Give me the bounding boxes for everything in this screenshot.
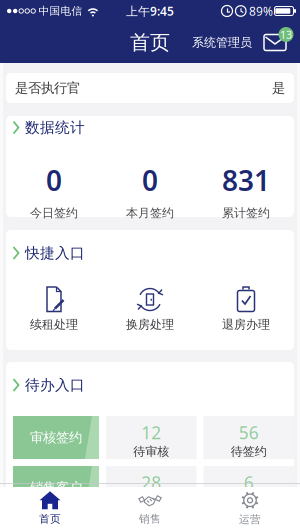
staticText: 运营 — [239, 513, 261, 526]
staticText: 28 — [141, 471, 161, 494]
button[interactable]: 12 — [106, 416, 196, 459]
staticText: 中国电信 — [38, 4, 82, 17]
staticText: 续租处理 — [30, 317, 78, 332]
staticText: 数据统计 — [25, 118, 85, 136]
staticText: 0 — [46, 161, 62, 199]
staticText: 审核签约 — [30, 429, 82, 446]
button[interactable]: 续租处理 — [6, 286, 102, 332]
staticText: 销售 — [139, 512, 161, 525]
button[interactable]: 消息 — [252, 34, 300, 50]
button[interactable]: 28 — [106, 466, 196, 509]
staticText: 56 — [239, 421, 259, 444]
staticText: 待办入口 — [25, 376, 85, 394]
staticText: 是否执行官 — [15, 80, 80, 96]
staticText: 快捷入口 — [25, 244, 85, 262]
staticText: 退房办理 — [222, 317, 270, 332]
staticText: 待签约 — [231, 444, 267, 459]
staticText: 今日签约 — [30, 206, 78, 220]
button[interactable]: 是否执行官 — [0, 73, 300, 103]
staticText: 待分配 — [231, 494, 267, 509]
button[interactable]: 运营 — [200, 491, 300, 526]
button[interactable]: 首页 — [0, 491, 100, 525]
staticText: 销售客户 — [30, 479, 82, 496]
button[interactable]: 换房处理 — [102, 286, 198, 332]
button[interactable]: 销售客户 — [13, 466, 99, 509]
button[interactable]: 56 — [203, 416, 294, 459]
staticText: 是 — [272, 80, 285, 96]
staticText: 13 — [280, 27, 292, 42]
button[interactable]: 6 — [203, 466, 294, 509]
staticText: 831 — [222, 161, 270, 199]
staticText: 累计签约 — [222, 206, 270, 220]
button[interactable]: 系统管理员 — [192, 35, 252, 50]
staticText: 待跟进 — [133, 494, 169, 509]
staticText: 首页 — [130, 30, 170, 55]
staticText: 6 — [244, 471, 254, 494]
staticText: 待审核 — [133, 444, 169, 459]
staticText: 本月签约 — [126, 206, 174, 220]
staticText: 首页 — [39, 512, 61, 525]
button[interactable]: 销售 — [100, 491, 200, 525]
staticText: 89% — [249, 3, 273, 19]
staticText: 12 — [141, 421, 161, 444]
button[interactable]: 退房办理 — [198, 286, 294, 332]
staticText: 系统管理员 — [192, 35, 252, 50]
staticText: 0 — [142, 161, 158, 199]
button[interactable]: 审核签约 — [13, 416, 99, 459]
staticText: 换房处理 — [126, 317, 174, 332]
staticText: 上午9:45 — [126, 3, 174, 19]
